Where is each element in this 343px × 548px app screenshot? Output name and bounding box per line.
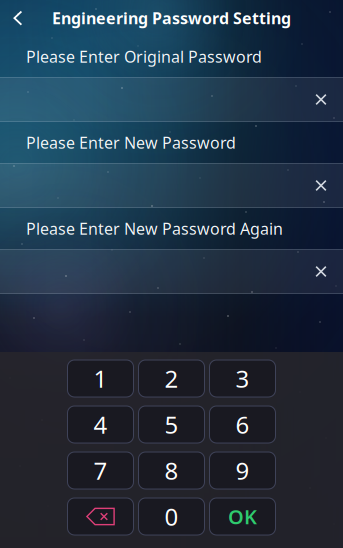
button[interactable]: 6 — [209, 406, 275, 443]
staticText: 7 — [93, 455, 107, 486]
button[interactable] — [67, 498, 133, 535]
staticText: 9 — [235, 455, 249, 486]
button[interactable]: 2 — [138, 360, 204, 397]
staticText: Engineering Password Setting — [52, 7, 291, 29]
staticText: Please Enter New Password Again — [26, 218, 283, 239]
staticText: 5 — [164, 409, 178, 440]
staticText: Please Enter Original Password — [26, 46, 262, 67]
button[interactable]: Clear password field — [0, 77, 343, 122]
staticText: 0 — [164, 501, 178, 532]
button[interactable]: 7 — [67, 452, 133, 489]
button[interactable]: 8 — [138, 452, 204, 489]
staticText: 1 — [93, 363, 107, 394]
button[interactable]: 3 — [209, 360, 275, 397]
button[interactable]: Clear password field — [0, 249, 343, 294]
staticText: 3 — [235, 363, 249, 394]
staticText: 6 — [235, 409, 249, 440]
staticText: Please Enter New Password — [26, 132, 236, 153]
button[interactable]: 4 — [67, 406, 133, 443]
button[interactable]: OK — [209, 498, 275, 535]
staticText: 2 — [164, 363, 178, 394]
button[interactable]: Clear password field — [0, 163, 343, 208]
staticText: 4 — [93, 409, 107, 440]
button[interactable]: 9 — [209, 452, 275, 489]
staticText: OK — [228, 503, 257, 530]
button[interactable]: 0 — [138, 498, 204, 535]
button[interactable]: Back — [0, 0, 36, 36]
staticText: 8 — [164, 455, 178, 486]
button[interactable]: 5 — [138, 406, 204, 443]
button[interactable]: 1 — [67, 360, 133, 397]
